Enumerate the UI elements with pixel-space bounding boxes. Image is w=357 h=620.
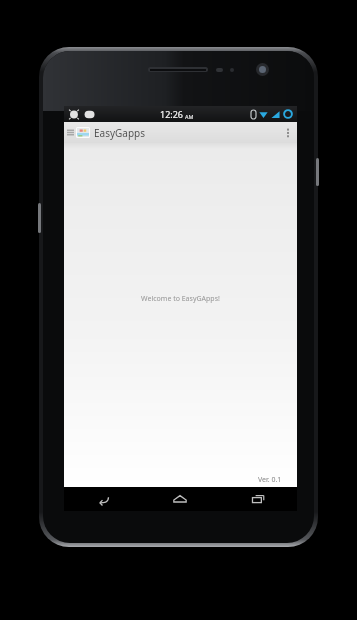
staticText: Welcome to EasyGApps!: [141, 294, 220, 304]
button[interactable]: Home: [141, 487, 219, 511]
staticText: AM: [185, 113, 194, 120]
staticText: Ver. 0.1: [258, 475, 282, 485]
button[interactable]: Back: [64, 487, 141, 511]
button[interactable]: More options: [279, 122, 297, 143]
staticText: EasyGapps: [94, 126, 146, 140]
staticText: 12:26: [160, 108, 184, 120]
button[interactable]: Open navigation drawer: [64, 122, 297, 143]
button[interactable]: Recent apps: [219, 487, 297, 511]
other: Open navigation drawer: [67, 128, 74, 137]
